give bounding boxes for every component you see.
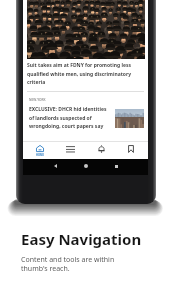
button[interactable]: Saved: [118, 145, 144, 159]
staticText: Suit takes aim at FDNY for promoting les…: [27, 62, 144, 85]
staticText: Easy Navigation: [21, 229, 142, 249]
staticText: Content and tools are within thumb's rea…: [21, 255, 115, 273]
staticText: EXCLUSIVE: DHCR hid identities of landlo…: [29, 106, 111, 129]
staticText: NEW-YORK: [29, 98, 46, 102]
button[interactable]: Alerts: [88, 145, 114, 159]
button[interactable]: Sections: [57, 145, 83, 159]
button[interactable]: Home: [80, 160, 92, 172]
button[interactable]: Back: [49, 160, 61, 172]
button[interactable]: Home: [27, 145, 53, 159]
staticText: HOME: [36, 153, 44, 157]
button[interactable]: Recent apps: [110, 160, 122, 172]
